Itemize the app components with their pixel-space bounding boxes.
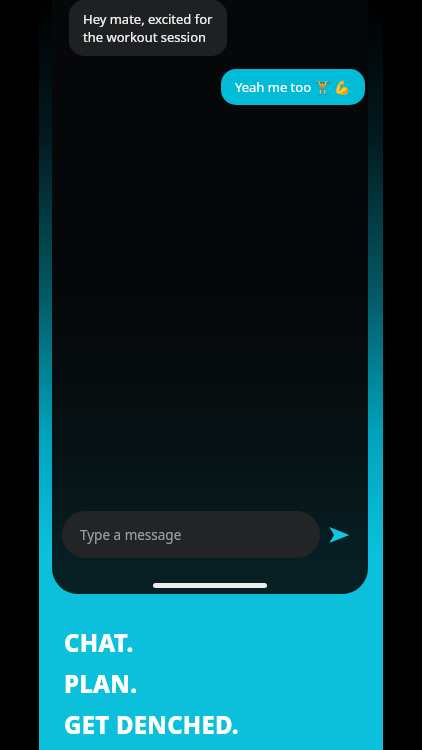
button[interactable]: Yeah me too 🏋️ 💪 — [221, 69, 365, 105]
staticText: PLAN. — [64, 667, 138, 700]
staticText: Hey mate, excited for the workout sessio… — [83, 10, 213, 46]
staticText: Type a message — [80, 526, 182, 544]
staticText: CHAT. — [64, 626, 134, 659]
button[interactable]: Type a message — [62, 511, 320, 558]
button[interactable]: Hey mate, excited for the workout sessio… — [69, 0, 227, 56]
button[interactable]: Send — [320, 516, 358, 554]
staticText: GET DENCHED. — [64, 708, 239, 741]
staticText: Yeah me too 🏋️ 💪 — [235, 78, 351, 96]
